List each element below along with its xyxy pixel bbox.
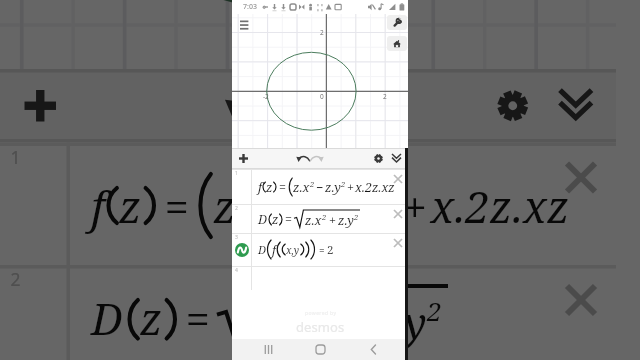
staticText: z.y bbox=[325, 177, 381, 237]
staticText: D bbox=[91, 289, 126, 349]
staticText: − bbox=[294, 177, 322, 237]
staticText: powered by bbox=[305, 310, 337, 317]
staticText: + bbox=[347, 179, 354, 196]
staticText: x,y bbox=[286, 243, 300, 257]
staticText: 2 bbox=[320, 28, 324, 37]
staticText: 2 bbox=[341, 179, 346, 189]
button[interactable]: 1 bbox=[0, 142, 616, 265]
staticText: 2 bbox=[383, 92, 387, 101]
staticText: 4 bbox=[235, 267, 238, 274]
staticText: 0 bbox=[320, 92, 324, 101]
staticText: 3 bbox=[235, 234, 238, 241]
button[interactable]: 3 bbox=[232, 233, 408, 266]
staticText: -2 bbox=[263, 92, 269, 101]
staticText: z.y bbox=[338, 212, 354, 229]
staticText: 1 bbox=[235, 170, 238, 177]
button[interactable]: Collapse keypad bbox=[546, 69, 605, 142]
staticText: 7:03 bbox=[243, 2, 257, 12]
button[interactable]: Delete expression bbox=[391, 236, 405, 250]
button[interactable]: 4 bbox=[232, 266, 408, 290]
staticText: z bbox=[119, 177, 143, 237]
staticText: 2 bbox=[235, 205, 238, 212]
button[interactable]: Collapse keypad bbox=[388, 148, 405, 169]
staticText: − bbox=[316, 179, 324, 196]
button[interactable]: Graph settings bbox=[387, 15, 407, 30]
button[interactable]: Settings bbox=[483, 69, 542, 142]
button[interactable]: Redo bbox=[266, 69, 329, 142]
staticText: 2 bbox=[10, 268, 21, 293]
staticText: = bbox=[319, 243, 325, 257]
staticText: z bbox=[272, 211, 279, 228]
button[interactable]: Add expression bbox=[235, 148, 252, 169]
staticText: f bbox=[258, 179, 262, 196]
staticText: z bbox=[140, 289, 164, 349]
staticText: 1 bbox=[10, 146, 21, 170]
staticText: z bbox=[266, 179, 273, 196]
staticText: x.2z.xz bbox=[355, 179, 395, 196]
button[interactable]: Settings bbox=[370, 148, 387, 169]
staticText: + bbox=[329, 212, 336, 229]
staticText: 2 bbox=[327, 242, 334, 258]
staticText: + bbox=[402, 177, 427, 237]
button[interactable]: Redo bbox=[308, 148, 326, 169]
staticText: z.y bbox=[371, 293, 427, 352]
staticText: desmos bbox=[296, 318, 345, 336]
staticText: D bbox=[258, 242, 266, 257]
staticText: = bbox=[164, 177, 189, 237]
button[interactable]: 2 bbox=[232, 204, 408, 233]
button[interactable]: Add expression bbox=[10, 69, 70, 142]
staticText: z.x bbox=[293, 179, 310, 196]
button[interactable]: Menu bbox=[237, 16, 253, 32]
staticText: = bbox=[279, 179, 286, 196]
staticText: z.x bbox=[305, 212, 322, 229]
staticText: 2 bbox=[273, 177, 290, 212]
staticText: 2 bbox=[310, 179, 315, 189]
button[interactable]: 1 bbox=[232, 169, 408, 204]
staticText: f bbox=[272, 242, 276, 258]
staticText: z.x bbox=[213, 177, 273, 237]
button[interactable]: Undo bbox=[294, 148, 312, 169]
staticText: D bbox=[258, 211, 268, 228]
button[interactable]: Delete expression bbox=[556, 275, 605, 324]
staticText: z.y bbox=[325, 179, 341, 196]
staticText: 2 bbox=[354, 212, 359, 222]
button[interactable]: Recent apps bbox=[251, 339, 285, 360]
staticText: x.2z.xz bbox=[430, 177, 570, 237]
button[interactable]: Delete expression bbox=[391, 207, 405, 221]
staticText: 2 bbox=[315, 293, 332, 328]
button[interactable]: Delete expression bbox=[391, 172, 405, 186]
staticText: = bbox=[285, 211, 292, 228]
staticText: z.x bbox=[255, 293, 315, 352]
button[interactable]: Back bbox=[356, 339, 390, 360]
staticText: 2 bbox=[427, 293, 444, 328]
staticText: 2 bbox=[322, 212, 327, 222]
button[interactable]: Home bbox=[387, 36, 407, 51]
staticText: f bbox=[91, 177, 105, 237]
staticText: 2 bbox=[381, 177, 399, 212]
staticText: + bbox=[339, 293, 364, 352]
button[interactable]: Undo bbox=[217, 69, 280, 142]
button[interactable]: 2 bbox=[0, 265, 616, 360]
staticText: = bbox=[185, 289, 210, 349]
button[interactable]: Delete expression bbox=[556, 153, 605, 202]
button[interactable]: Home bbox=[303, 339, 337, 360]
